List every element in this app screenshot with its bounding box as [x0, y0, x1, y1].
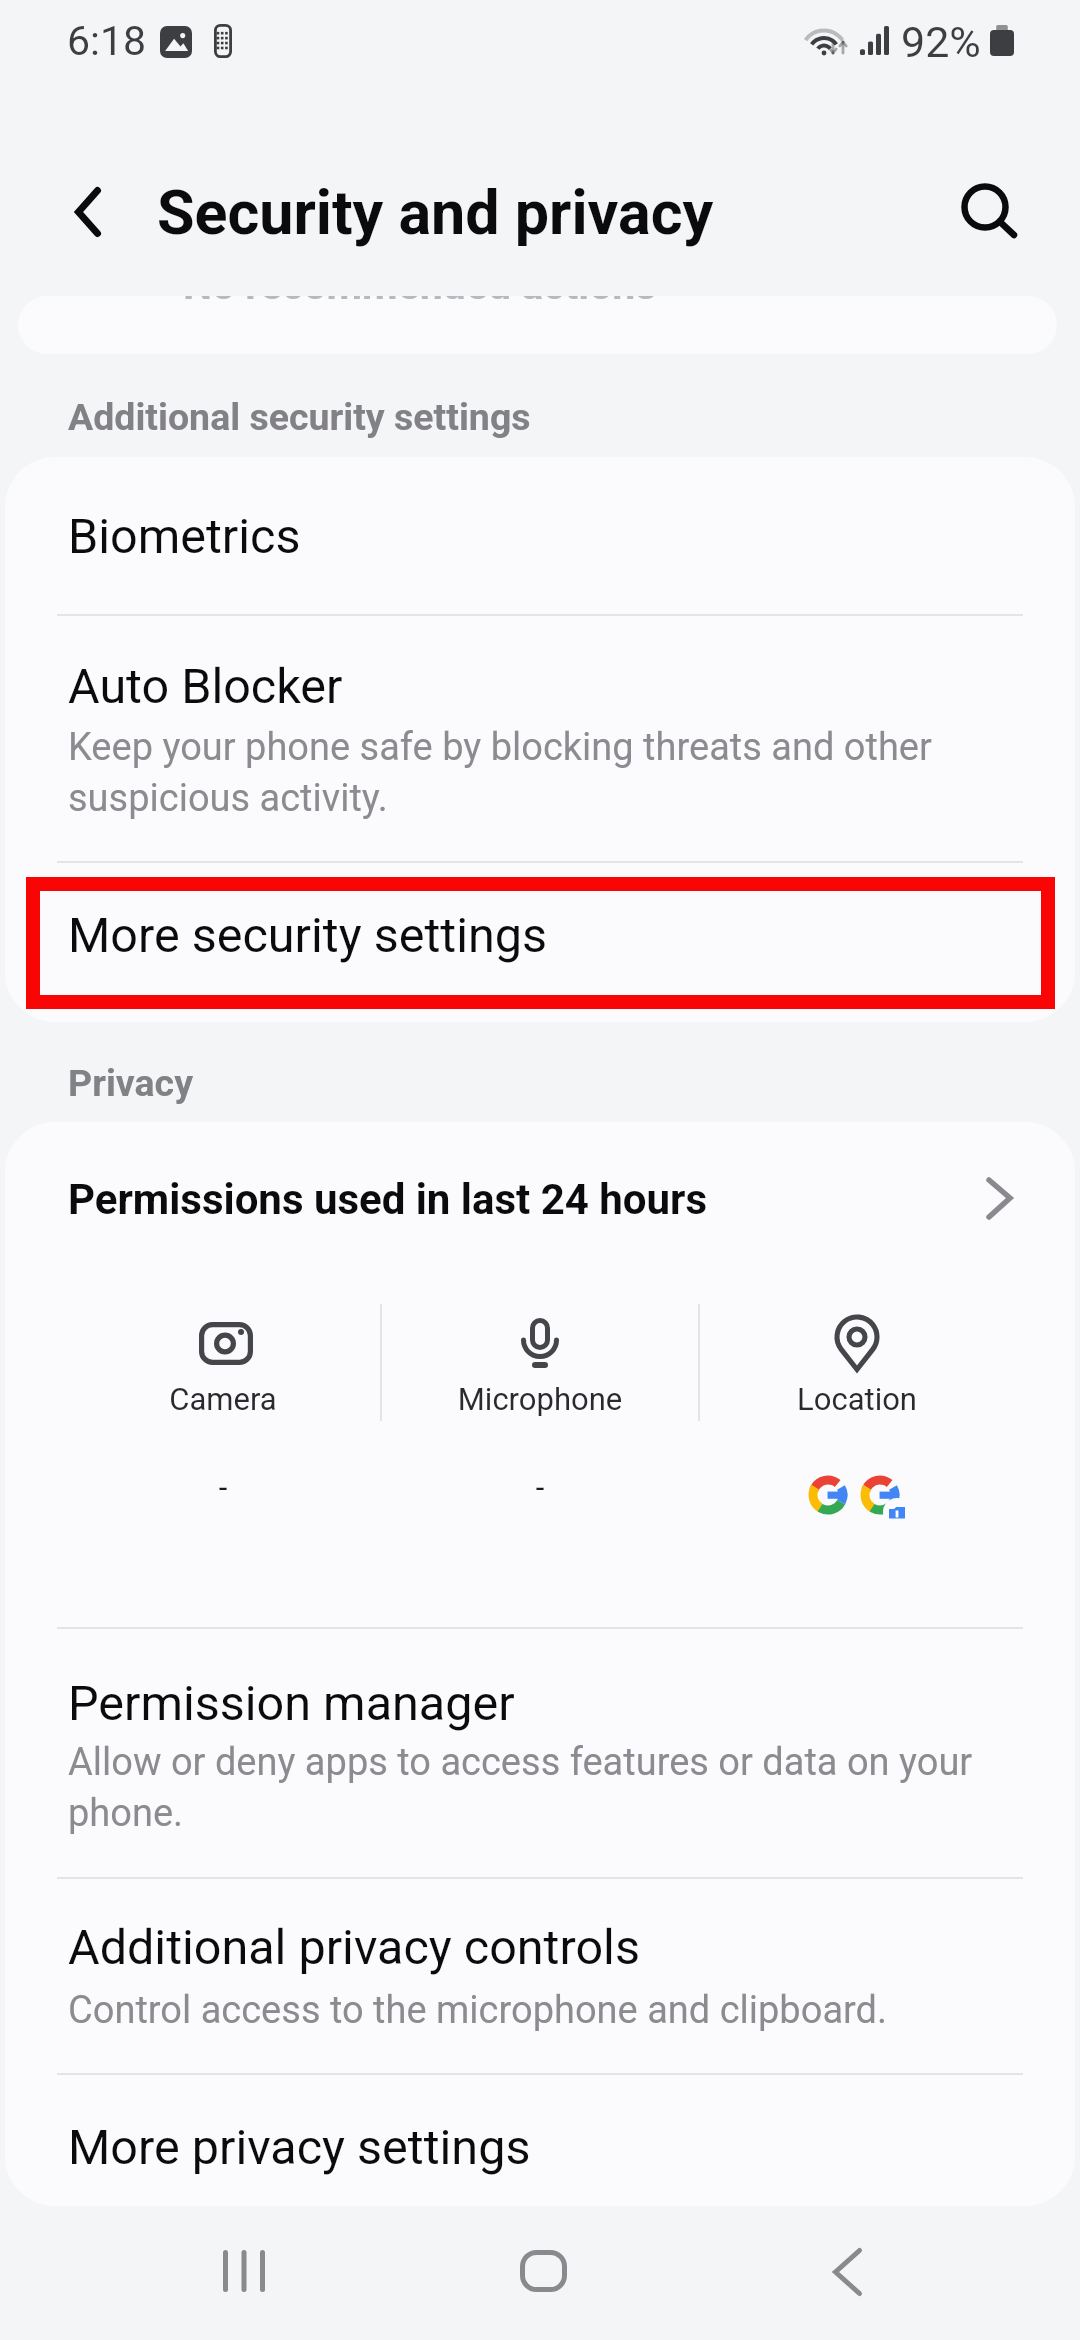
button[interactable] — [0, 1627, 1080, 1877]
staticText: Biometrics — [68, 508, 301, 565]
staticText: Microphone — [382, 1381, 698, 1417]
button[interactable] — [382, 1290, 698, 1530]
button[interactable] — [0, 615, 1080, 861]
button[interactable] — [0, 457, 1080, 615]
staticText: - — [382, 1469, 698, 1505]
button[interactable]: Navigate up — [40, 176, 113, 249]
staticText: Camera — [66, 1381, 380, 1417]
staticText: - — [66, 1469, 380, 1505]
staticText: 6:18 — [67, 17, 147, 65]
button[interactable]: Recent apps — [123, 2206, 363, 2340]
button[interactable] — [0, 1877, 1080, 2073]
button[interactable] — [0, 861, 1080, 1022]
staticText: No recommended actions — [183, 296, 657, 309]
staticText: 92% — [901, 17, 981, 67]
button[interactable]: Search — [948, 170, 1036, 246]
staticText: More security settings — [68, 907, 548, 964]
button[interactable] — [0, 1122, 1080, 1278]
button[interactable] — [0, 2073, 1080, 2206]
staticText: Permission manager — [68, 1675, 515, 1732]
staticText: Control access to the microphone and cli… — [68, 1988, 888, 2033]
button[interactable] — [66, 1290, 380, 1530]
staticText: Keep your phone safe by blocking threats… — [68, 725, 932, 820]
staticText: Auto Blocker — [68, 658, 343, 715]
staticText: Additional privacy controls — [68, 1919, 640, 1976]
staticText: Additional security settings — [68, 395, 531, 439]
button[interactable]: Home — [423, 2206, 663, 2340]
staticText: More privacy settings — [68, 2119, 531, 2176]
staticText: Privacy — [68, 1061, 194, 1105]
staticText: Security and privacy — [157, 177, 714, 248]
staticText: Allow or deny apps to access features or… — [68, 1740, 973, 1835]
staticText: Permissions used in last 24 hours — [68, 1175, 708, 1224]
button[interactable] — [700, 1290, 1014, 1530]
staticText: Location — [700, 1381, 1014, 1417]
button[interactable]: Back — [728, 2206, 968, 2340]
